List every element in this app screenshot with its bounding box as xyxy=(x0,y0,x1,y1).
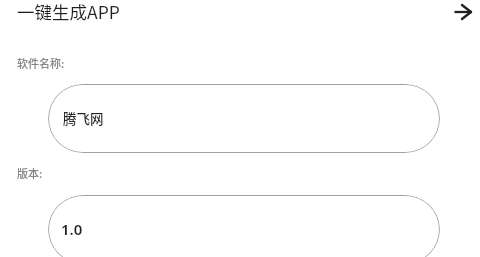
staticText: 版本: xyxy=(17,165,43,181)
button[interactable]: 一键生成APP xyxy=(17,0,120,24)
button[interactable]: Next xyxy=(448,0,476,24)
staticText: 1.0 xyxy=(61,219,83,239)
button[interactable]: 1.0 xyxy=(48,195,440,257)
staticText: 软件名称: xyxy=(17,55,65,71)
staticText: 一键生成APP xyxy=(17,0,120,24)
button[interactable]: 腾飞网 xyxy=(48,84,440,153)
staticText: 腾飞网 xyxy=(63,108,104,128)
